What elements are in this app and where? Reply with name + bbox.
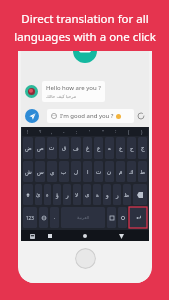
button[interactable]: خ [116,137,125,159]
staticText: ' [89,129,91,135]
button[interactable] [107,207,116,228]
staticText: ه [108,145,111,151]
button[interactable]: Recents [117,232,125,240]
button[interactable]: ( [122,127,135,136]
staticText: ث [49,145,55,151]
staticText: ن [107,169,112,175]
staticText: م [119,169,123,175]
button[interactable]: ب [59,161,69,182]
button[interactable]: ك [127,161,136,182]
button[interactable]: ظ [123,184,131,205]
staticText: ي [50,169,55,175]
button[interactable] [23,184,33,205]
button[interactable]: ؛ [109,127,122,136]
button[interactable]: ط [138,161,147,182]
staticText: ش [25,169,32,175]
staticText: languages with a one click [14,29,156,45]
staticText: I'm good and you ? [60,112,114,120]
button[interactable]: ص [35,137,45,159]
staticText: ل [74,169,78,175]
button[interactable]: ق [59,137,69,159]
staticText: ص [37,145,44,151]
staticText: ) [141,129,143,135]
staticText: ؟ [39,129,42,134]
staticText: : [76,129,78,135]
button[interactable]: ' [83,127,96,136]
button[interactable]: Attach [137,112,145,120]
button[interactable]: Back [46,232,54,240]
button[interactable]: ! [22,127,34,136]
staticText: ظ [124,192,130,198]
button[interactable]: ع [94,137,103,159]
staticText: العربية [77,215,90,220]
button[interactable]: ؤ [53,184,61,205]
staticText: ئ [36,192,41,198]
button[interactable]: Translate [129,207,147,228]
staticText: Hello how are you ? [46,84,101,92]
button[interactable]: Home [81,232,89,240]
staticText: ب [61,169,67,175]
button[interactable]: ت [94,161,103,182]
button[interactable]: ر [63,184,71,205]
button[interactable]: . [50,207,59,228]
button[interactable]: : [70,127,83,136]
button[interactable]: ح [127,137,136,159]
button[interactable]: ض [23,137,33,159]
button[interactable] [118,207,127,228]
button[interactable]: ة [93,184,101,205]
button[interactable]: ش [23,161,33,182]
staticText: لا [75,192,79,198]
button[interactable]: ج [138,137,147,159]
button[interactable]: ء [44,184,51,205]
staticText: ف [73,145,79,151]
staticText: Direct translation for all [21,11,149,27]
button[interactable]: ل [71,161,81,182]
staticText: ( [128,129,130,135]
button[interactable]: - [58,127,70,136]
staticText: خ [119,145,123,151]
button[interactable]: ا [83,161,92,182]
button[interactable]: س [35,161,45,182]
button[interactable]: ه [105,137,114,159]
button[interactable]: " [96,127,109,136]
button[interactable]: Hello how are you ? [42,81,105,102]
staticText: غ [86,145,90,151]
staticText: ض [25,145,32,151]
button[interactable]: Share [25,109,39,123]
button[interactable]: العربية [61,207,105,228]
staticText: " [102,129,104,135]
button[interactable]: ى [83,184,91,205]
staticText: ء [46,192,49,198]
staticText: ر [66,192,69,198]
button[interactable]: غ [83,137,92,159]
button[interactable]: ي [47,161,57,182]
button[interactable]: ث [47,137,57,159]
button[interactable]: ؟ [34,127,46,136]
staticText: ط [140,169,146,175]
staticText: ك [129,169,134,175]
button[interactable]: ن [105,161,114,182]
button[interactable]: لا [73,184,81,205]
staticText: - [63,129,65,135]
button[interactable] [133,184,147,205]
button[interactable] [39,207,48,228]
button[interactable]: 123 [23,207,37,228]
staticText: ز [116,192,119,198]
staticText: ق [62,145,67,151]
button[interactable]: Contact avatar [25,85,38,98]
button[interactable]: م [116,161,125,182]
button[interactable]: Keyboard [28,232,36,240]
button[interactable]: ئ [35,184,42,205]
staticText: و [106,192,109,198]
button[interactable]: و [103,184,111,205]
button[interactable]: Home [75,248,96,269]
button[interactable]: I'm good and you ? [47,109,134,123]
staticText: . [54,214,56,221]
button[interactable]: ف [71,137,81,159]
staticText: ! [27,129,29,135]
staticText: ج [141,145,145,151]
button[interactable]: ز [113,184,121,205]
button[interactable]: , [46,127,58,136]
staticText: ؛ [115,129,117,134]
button[interactable]: ) [135,127,148,136]
